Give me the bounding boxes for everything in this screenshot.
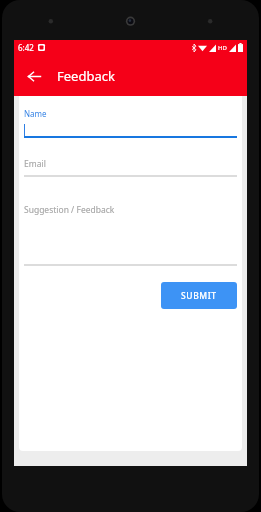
staticText: 6:42 bbox=[18, 42, 34, 53]
staticText: SUBMIT bbox=[181, 290, 217, 302]
button[interactable]: Email bbox=[19, 158, 242, 177]
staticText: Name bbox=[24, 108, 47, 119]
staticText: Feedback bbox=[57, 67, 115, 85]
staticText: Email bbox=[24, 158, 46, 170]
button[interactable]: Back bbox=[21, 63, 47, 89]
button[interactable]: Name bbox=[19, 108, 242, 138]
staticText: HD bbox=[218, 44, 227, 52]
button[interactable]: Suggestion / Feedback bbox=[19, 204, 242, 266]
button[interactable]: SUBMIT bbox=[161, 282, 237, 309]
staticText: Suggestion / Feedback bbox=[24, 204, 115, 216]
